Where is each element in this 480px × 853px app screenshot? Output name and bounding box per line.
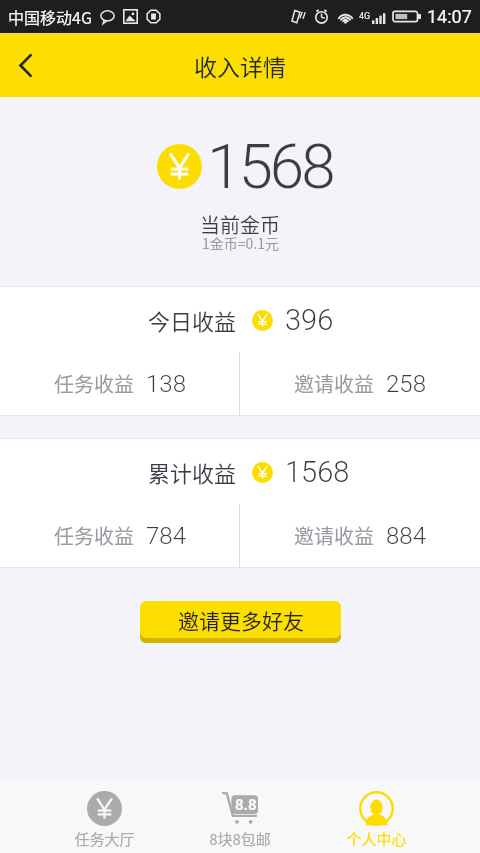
staticText: 1568 (285, 455, 350, 489)
staticText: 个人中心 (346, 828, 407, 850)
button[interactable]: 邀请收益 (240, 504, 480, 567)
staticText: 258 (386, 370, 426, 398)
button[interactable]: 邀请更多好友 (140, 601, 341, 638)
staticText: 884 (386, 522, 426, 550)
staticText: 14:07 (427, 6, 472, 27)
button[interactable]: 8.8 (172, 780, 308, 853)
staticText: 138 (146, 370, 186, 398)
staticText: 4G (359, 11, 371, 22)
button[interactable]: 任务收益 (0, 352, 239, 415)
staticText: 中国移动4G (8, 5, 92, 28)
button[interactable]: 个人中心 (308, 780, 444, 853)
staticText: 收入详情 (194, 49, 286, 82)
button[interactable]: 任务收益 (0, 504, 239, 567)
staticText: 任务收益 (54, 369, 134, 398)
staticText: 邀请更多好友 (178, 605, 304, 635)
staticText: 邀请收益 (294, 369, 374, 398)
staticText: 任务大厅 (74, 828, 135, 850)
staticText: 396 (285, 303, 334, 337)
staticText: 1568 (207, 130, 333, 203)
staticText: 8块8包邮 (209, 828, 271, 850)
staticText: 784 (146, 522, 186, 550)
button[interactable]: 邀请收益 (240, 352, 480, 415)
staticText: 任务收益 (54, 521, 134, 550)
staticText: 当前金币 (200, 210, 280, 239)
staticText: 今日收益 (148, 304, 237, 336)
staticText: 邀请收益 (294, 521, 374, 550)
staticText: 8.8 (235, 796, 257, 814)
button[interactable]: 任务大厅 (36, 780, 172, 853)
staticText: 累计收益 (148, 456, 237, 488)
button[interactable]: Back (0, 40, 50, 90)
staticText: 1金币=0.1元 (202, 233, 279, 253)
